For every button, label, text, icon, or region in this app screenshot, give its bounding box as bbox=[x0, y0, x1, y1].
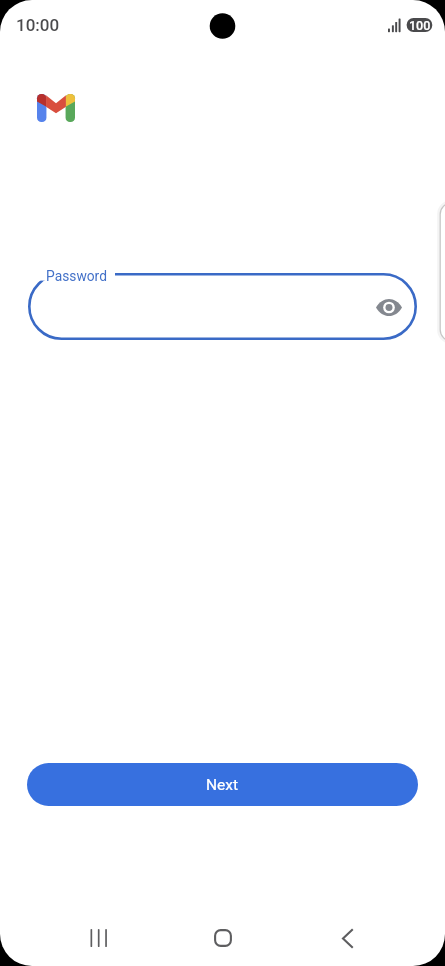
button[interactable] bbox=[28, 273, 417, 340]
button[interactable]: Back bbox=[285, 910, 410, 966]
button[interactable]: Next bbox=[27, 763, 418, 806]
staticText: 100 bbox=[409, 18, 431, 32]
staticText: 10:00 bbox=[16, 15, 60, 35]
staticText: Next bbox=[206, 776, 239, 794]
button[interactable]: Show password bbox=[371, 289, 407, 325]
button[interactable]: Home bbox=[160, 910, 285, 966]
button[interactable]: Recent apps bbox=[35, 910, 160, 966]
staticText: Password bbox=[46, 268, 107, 284]
